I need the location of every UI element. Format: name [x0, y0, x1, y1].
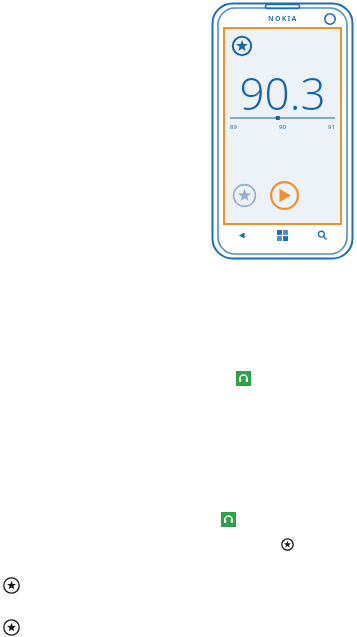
button[interactable]: Headphones [221, 512, 236, 527]
button[interactable]: Search [317, 230, 328, 241]
button[interactable]: Add to favourites [232, 183, 257, 208]
button[interactable]: Favourite [3, 577, 20, 594]
button[interactable]: Play [270, 181, 299, 210]
staticText: 89 [230, 123, 237, 131]
staticText: 90.3 [239, 63, 326, 123]
button[interactable]: Start [277, 230, 288, 241]
staticText: 91 [328, 123, 335, 131]
button[interactable]: Favourite station [231, 35, 253, 57]
button[interactable]: Back [237, 230, 248, 241]
button[interactable]: Favourite [281, 538, 294, 551]
button[interactable]: Favourite [3, 619, 20, 636]
button[interactable]: Headphones [236, 371, 251, 386]
button[interactable]: Tune frequency [230, 114, 335, 122]
staticText: NOKIA [268, 14, 298, 24]
staticText: 90 [279, 123, 286, 131]
